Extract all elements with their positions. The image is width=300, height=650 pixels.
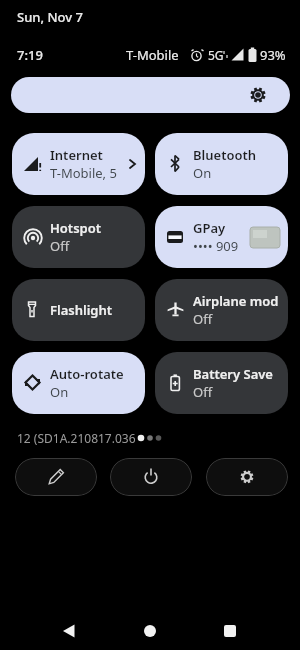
button[interactable]: GPay bbox=[155, 206, 288, 268]
staticText: 7:19 bbox=[17, 46, 43, 64]
button[interactable]: Flashlight bbox=[12, 279, 145, 341]
button[interactable]: Internet bbox=[12, 133, 145, 195]
staticText: T-Mobile bbox=[126, 46, 179, 64]
staticText: GPay bbox=[193, 219, 226, 237]
button[interactable] bbox=[110, 458, 192, 496]
staticText: Hotspot bbox=[50, 219, 101, 237]
button[interactable]: Battery Save bbox=[155, 352, 288, 414]
staticText: On bbox=[193, 164, 212, 182]
button[interactable] bbox=[62, 624, 75, 638]
staticText: Airplane mod bbox=[193, 292, 279, 310]
button[interactable]: Auto-rotate bbox=[12, 352, 145, 414]
staticText: Flashlight bbox=[50, 301, 113, 319]
staticText: 93% bbox=[260, 46, 286, 64]
staticText: Battery Save bbox=[193, 365, 273, 383]
button[interactable] bbox=[144, 625, 156, 637]
staticText: Off bbox=[50, 237, 70, 255]
button[interactable] bbox=[15, 458, 97, 496]
button[interactable]: Hotspot bbox=[12, 206, 145, 268]
staticText: Off bbox=[193, 310, 213, 328]
staticText: 5G bbox=[208, 47, 224, 63]
staticText: Bluetooth bbox=[193, 146, 257, 164]
staticText: Internet bbox=[50, 146, 103, 164]
staticText: Sun, Nov 7 bbox=[17, 8, 83, 26]
staticText: •••• 909 bbox=[193, 237, 239, 255]
button[interactable]: Airplane mod bbox=[155, 279, 288, 341]
button[interactable]: Bluetooth bbox=[155, 133, 288, 195]
staticText: On bbox=[50, 383, 69, 401]
staticText: Auto-rotate bbox=[50, 365, 124, 383]
staticText: 12 (SD1A.210817.036 bbox=[17, 430, 136, 446]
button[interactable] bbox=[11, 77, 290, 113]
staticText: T-Mobile, 5 bbox=[50, 164, 117, 182]
button[interactable] bbox=[224, 625, 236, 637]
button[interactable] bbox=[206, 458, 288, 496]
staticText: Off bbox=[193, 383, 213, 401]
